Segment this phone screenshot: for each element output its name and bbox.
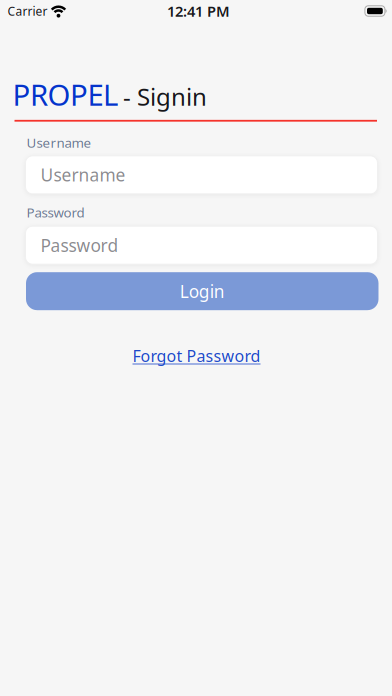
staticText: Password (40, 234, 118, 257)
staticText: Username (40, 163, 125, 186)
staticText: Login (180, 280, 225, 303)
staticText: Password (26, 203, 84, 221)
staticText: Carrier (7, 3, 47, 19)
staticText: PROPEL (12, 75, 118, 114)
staticText: Username (26, 134, 91, 151)
staticText: Forgot Password (132, 345, 260, 366)
button[interactable]: Forgot Password (132, 345, 260, 366)
staticText: 12:41 PM (167, 1, 230, 21)
button[interactable]: Login (26, 272, 378, 310)
staticText: - Signin (123, 80, 207, 112)
